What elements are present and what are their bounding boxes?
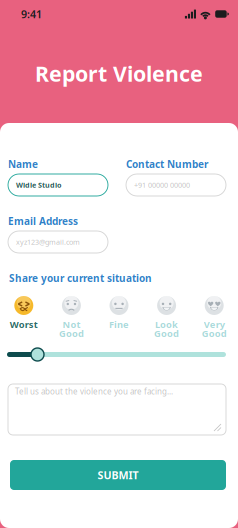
staticText: Very <box>204 318 225 331</box>
staticText: Look <box>155 318 178 331</box>
staticText: xyz123@gmail.com <box>16 237 80 247</box>
button[interactable]: +91 00000 00000 <box>126 174 226 196</box>
button[interactable]: SUBMIT <box>10 460 226 490</box>
button[interactable]: Worst <box>0 296 48 338</box>
staticText: +91 00000 00000 <box>134 180 190 190</box>
button[interactable]: Look <box>143 296 190 338</box>
staticText: Not <box>62 318 80 331</box>
button[interactable]: Not <box>48 296 95 338</box>
button[interactable]: Widle Studio <box>8 174 108 196</box>
staticText: Contact Number <box>126 157 208 171</box>
staticText: Widle Studio <box>16 180 62 190</box>
button[interactable]: Very <box>190 296 238 338</box>
button[interactable]: Fine <box>95 296 143 338</box>
staticText: Email Address <box>8 214 78 228</box>
button[interactable]: xyz123@gmail.com <box>8 231 108 253</box>
staticText: Report Violence <box>35 59 203 88</box>
staticText: Name <box>8 157 38 171</box>
staticText: Share your current situation <box>9 271 152 285</box>
staticText: Worst <box>10 318 38 331</box>
staticText: 9:41 <box>21 7 42 21</box>
staticText: Tell us about the violence you are facin… <box>15 386 173 397</box>
staticText: SUBMIT <box>97 468 138 482</box>
staticText: Fine <box>109 318 129 331</box>
staticText: Good <box>154 327 179 340</box>
staticText: Good <box>59 327 84 340</box>
staticText: Good <box>202 327 227 340</box>
